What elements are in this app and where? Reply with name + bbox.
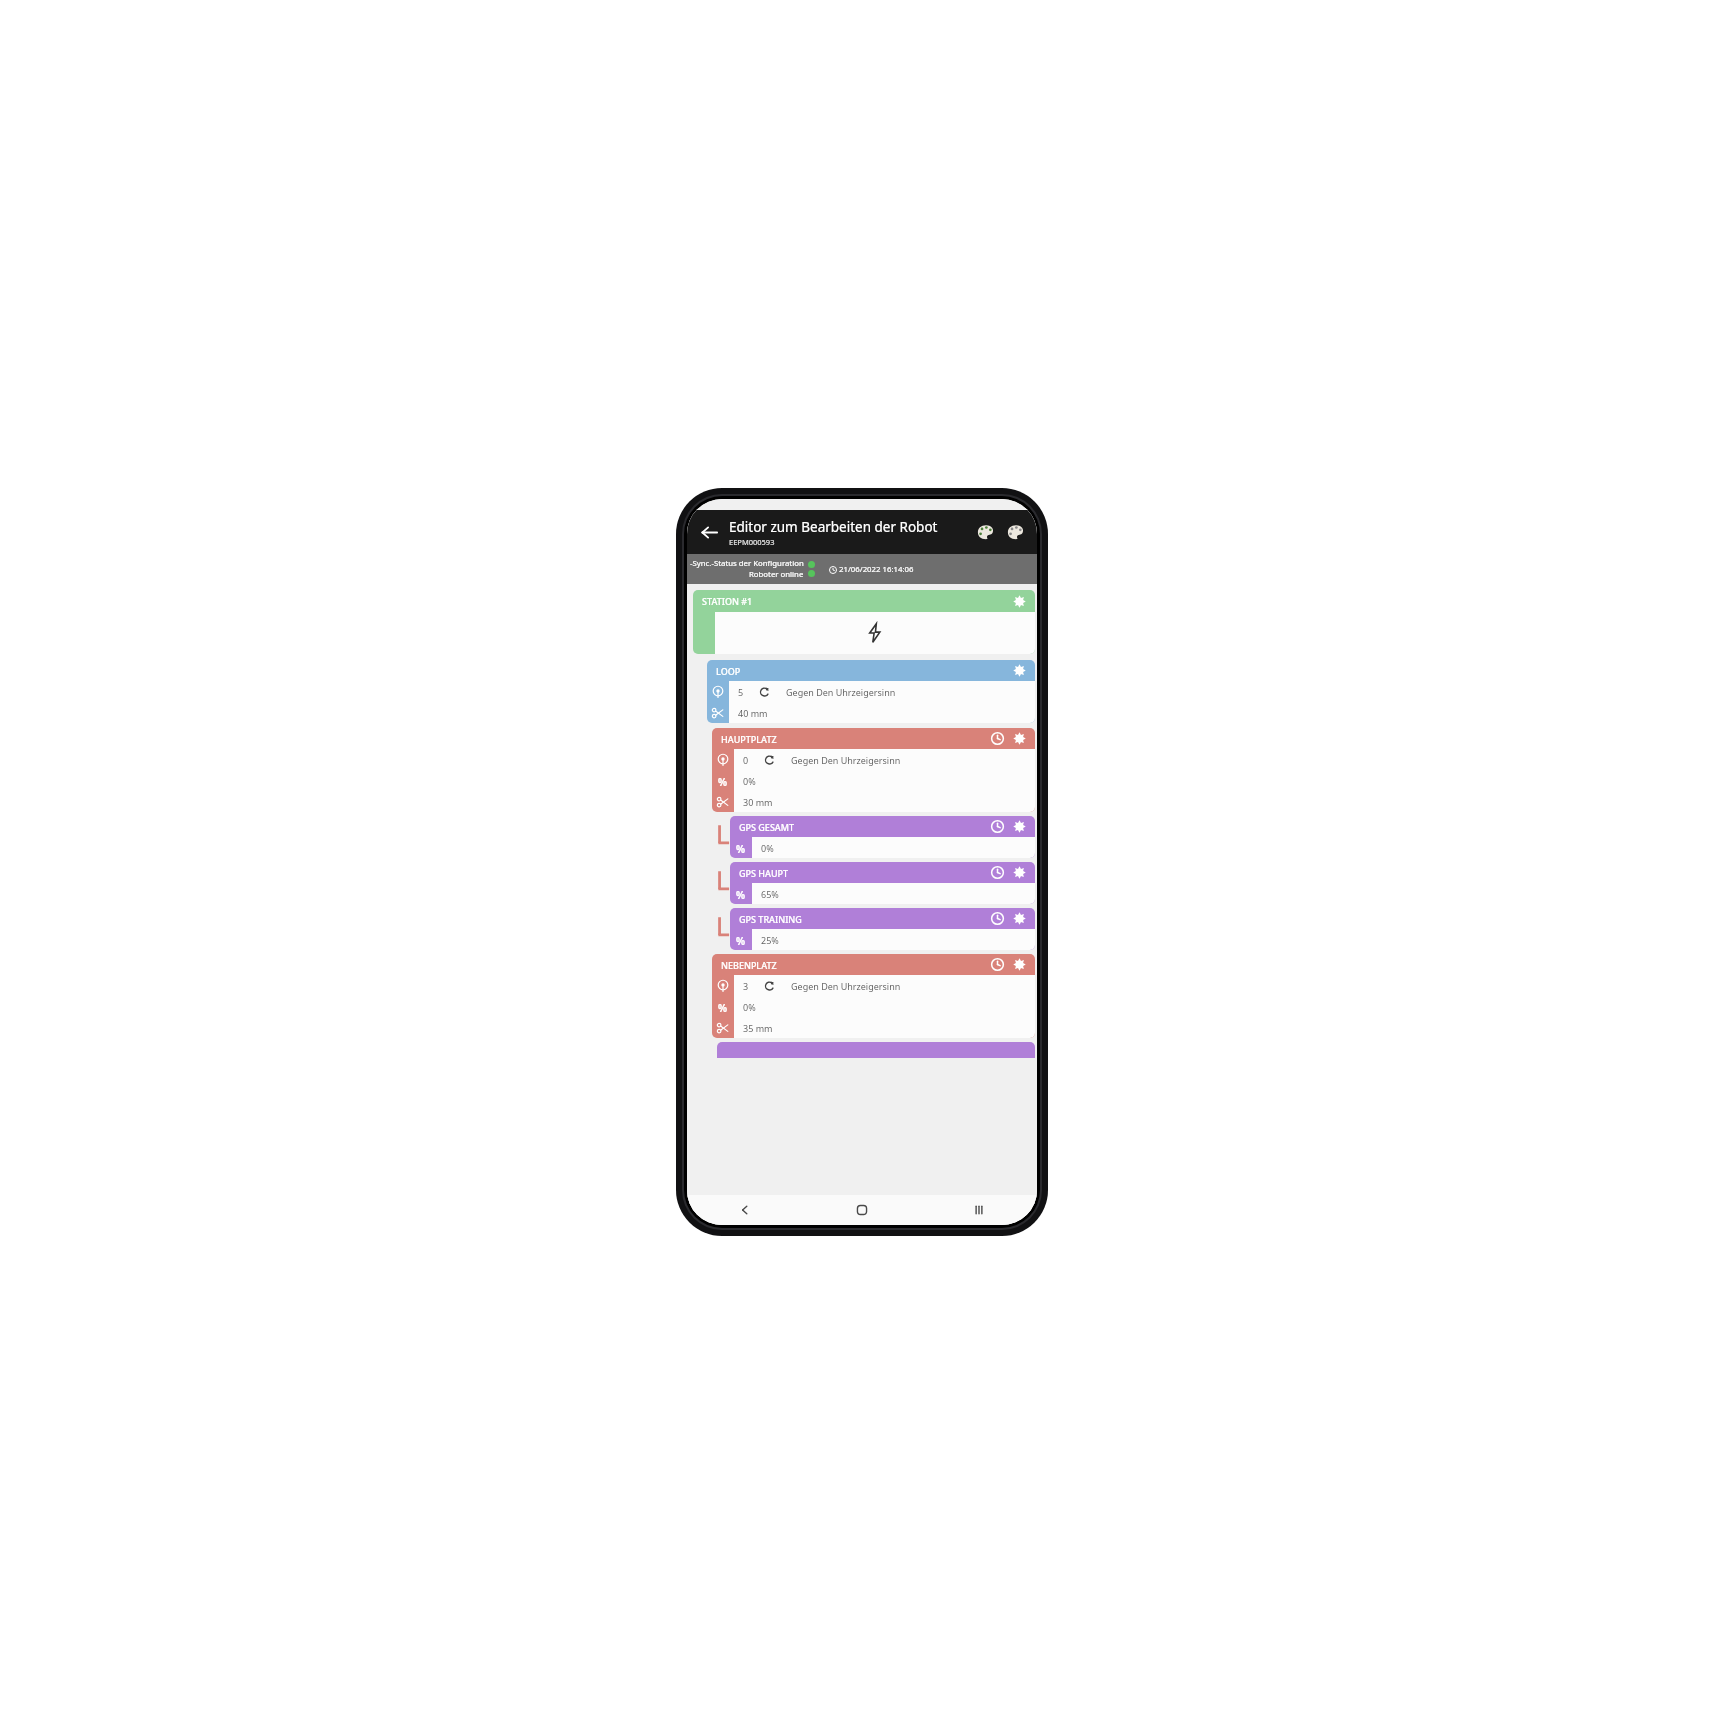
staticText: GPS TRAINING — [739, 913, 802, 925]
staticText: 3 — [743, 980, 749, 992]
button[interactable]: Palette — [971, 517, 1001, 547]
staticText: % — [736, 842, 746, 854]
staticText: GPS HAUPT — [739, 867, 789, 879]
staticText: EEPM000593 — [729, 537, 775, 547]
staticText: 0% — [743, 775, 756, 787]
staticText: % — [718, 1001, 728, 1013]
button[interactable] — [717, 1042, 1035, 1058]
button[interactable]: GPS GESAMT — [730, 816, 1035, 858]
staticText: 21/06/2022 16:14:06 — [839, 564, 914, 575]
staticText: Gegen Den Uhrzeigersinn — [791, 980, 901, 992]
staticText: NEBENPLATZ — [721, 959, 777, 971]
staticText: 0% — [743, 1001, 756, 1013]
staticText: Gegen Den Uhrzeigersinn — [786, 686, 896, 698]
button[interactable]: NEBENPLATZ — [712, 954, 1035, 1038]
staticText: Roboter online — [749, 569, 804, 580]
staticText: Editor zum Bearbeiten der Robot — [729, 518, 938, 536]
staticText: LOOP — [716, 665, 741, 677]
staticText: 35 mm — [743, 1022, 773, 1034]
staticText: Gegen Den Uhrzeigersinn — [791, 754, 901, 766]
button[interactable]: LOOP — [707, 660, 1035, 723]
button[interactable]: Recent apps — [920, 1195, 1037, 1225]
staticText: % — [736, 934, 746, 946]
staticText: 25% — [761, 934, 779, 946]
button[interactable]: Back — [693, 516, 725, 548]
button[interactable]: Theme — [1001, 517, 1031, 547]
staticText: 30 mm — [743, 796, 773, 808]
button[interactable]: GPS HAUPT — [730, 862, 1035, 904]
button[interactable]: HAUPTPLATZ — [712, 728, 1035, 812]
staticText: -Sync.-Status der Konfiguration — [690, 558, 804, 569]
staticText: % — [736, 888, 746, 900]
staticText: STATION #1 — [702, 595, 753, 607]
button[interactable]: GPS TRAINING — [730, 908, 1035, 950]
staticText: % — [718, 775, 728, 787]
staticText: 65% — [761, 888, 779, 900]
button[interactable]: STATION #1 — [693, 590, 1035, 654]
staticText: GPS GESAMT — [739, 821, 795, 833]
staticText: HAUPTPLATZ — [721, 733, 777, 745]
staticText: 0% — [761, 842, 774, 854]
staticText: 5 — [738, 686, 744, 698]
staticText: 40 mm — [738, 707, 768, 719]
staticText: 0 — [743, 754, 749, 766]
button[interactable]: Back — [687, 1195, 803, 1225]
button[interactable]: Home — [803, 1195, 920, 1225]
